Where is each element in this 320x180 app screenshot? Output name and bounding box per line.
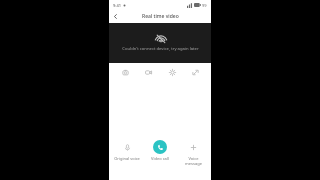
button[interactable]: Original voice [112,140,142,161]
button[interactable]: Video call [145,140,175,161]
staticText: Voice message [185,156,202,166]
staticText: Real time video [142,13,179,20]
button[interactable]: Back [109,10,122,23]
button[interactable]: Record [140,64,156,80]
staticText: 9:41 [113,3,121,8]
staticText: Original voice [114,156,140,161]
staticText: Couldn't connect device, try again later [122,46,199,52]
button[interactable]: Camera [117,64,133,80]
button[interactable]: Voice message [178,140,208,166]
button[interactable]: Flash [164,64,180,80]
staticText: Video call [151,156,169,161]
button[interactable]: Fullscreen [187,64,203,80]
staticText: 99 [202,3,207,8]
